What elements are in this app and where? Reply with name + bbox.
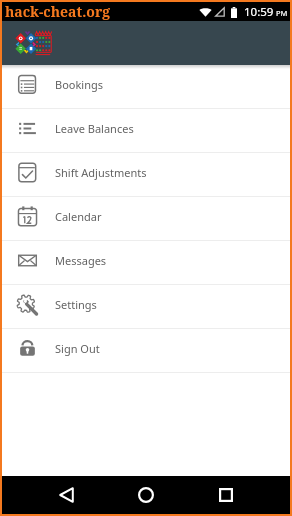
button[interactable]: Calendar [2, 197, 290, 241]
staticText: PM [276, 8, 288, 18]
button[interactable]: Bookings [2, 65, 290, 109]
staticText: Bookings [55, 77, 104, 92]
button[interactable]: Home [98, 476, 194, 514]
staticText: 10:59 [244, 4, 274, 20]
button[interactable]: Back [2, 476, 98, 514]
staticText: Leave Balances [55, 121, 134, 136]
button[interactable]: Messages [2, 241, 290, 285]
button[interactable]: Sign Out [2, 329, 290, 373]
staticText: Shift Adjustments [55, 165, 147, 180]
staticText: hack-cheat.org [5, 2, 111, 21]
button[interactable]: Recent apps [194, 476, 290, 514]
staticText: Sign Out [55, 341, 100, 356]
button[interactable]: Settings [2, 285, 290, 329]
staticText: Messages [55, 253, 107, 268]
staticText: Calendar [55, 209, 102, 224]
button[interactable]: Leave Balances [2, 109, 290, 153]
button[interactable]: Shift Adjustments [2, 153, 290, 197]
staticText: Settings [55, 297, 97, 312]
